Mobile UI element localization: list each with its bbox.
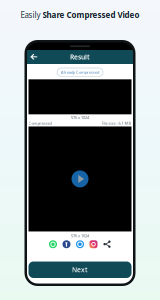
staticText: Share Compressed Video [42, 10, 139, 20]
staticText: Result [70, 53, 90, 61]
staticText: 576 x 1024 [71, 233, 89, 238]
staticText: 576 x 1024 [71, 115, 89, 120]
button[interactable]: Next [28, 261, 131, 278]
button[interactable]: More sharing options [103, 240, 111, 248]
button[interactable]: Share to WhatsApp [49, 240, 57, 248]
button[interactable]: Play video [71, 170, 88, 187]
staticText: Next [72, 265, 88, 274]
staticText: Already Compressed [61, 69, 99, 75]
staticText: Compressed [28, 121, 51, 126]
button[interactable]: Back [27, 51, 41, 63]
button[interactable]: Share to Instagram [89, 240, 97, 248]
staticText: File size : 6.1 MB [101, 121, 131, 126]
staticText: Easily [20, 10, 40, 20]
button[interactable]: Share to Facebook [62, 240, 70, 248]
button[interactable]: Share to Messenger [76, 240, 84, 248]
